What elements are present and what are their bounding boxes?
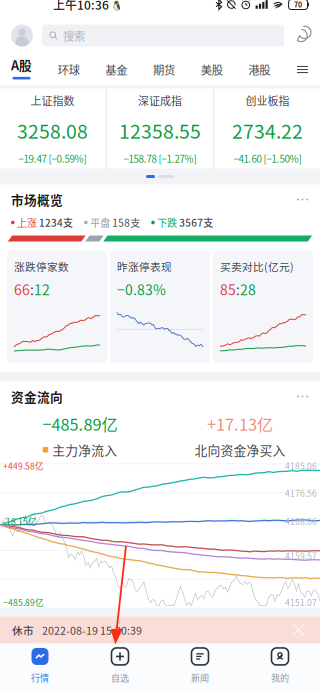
staticText: 上涨 — [17, 215, 37, 230]
staticText: 12358.55 — [119, 116, 201, 144]
staticText: 66 — [14, 279, 30, 299]
button[interactable]: A股 — [11, 54, 32, 84]
staticText: +17.13亿 — [207, 412, 273, 436]
staticText: 我的 — [271, 671, 289, 684]
button[interactable]: 搜索 — [42, 24, 284, 46]
staticText: 期货 — [153, 61, 175, 78]
button[interactable]: 深证成指 — [107, 88, 212, 168]
staticText: 新闻 — [191, 671, 209, 684]
staticText: 基金 — [105, 61, 127, 78]
staticText: 12 — [34, 279, 50, 299]
staticText: 买卖对比(亿元) — [220, 259, 294, 274]
staticText: 北向资金净买入 — [194, 440, 285, 459]
button[interactable]: 更多 — [297, 193, 309, 205]
button[interactable]: 上证指数 — [0, 88, 105, 168]
button[interactable]: 美股 — [201, 54, 223, 84]
button[interactable]: 账户 — [11, 24, 33, 46]
button[interactable]: 昨涨停表现 — [110, 250, 210, 362]
staticText: 4185.06 — [285, 459, 317, 472]
staticText: 涨跌停家数 — [14, 259, 69, 274]
staticText: 资金流向 — [11, 387, 63, 406]
staticText: 158支 — [110, 215, 140, 230]
staticText: −158.78 [−1.27%] — [123, 151, 196, 166]
staticText: −485.89亿 — [3, 596, 44, 608]
staticText: −485.89亿 — [42, 412, 117, 436]
button[interactable]: 环球 — [58, 54, 80, 84]
staticText: 港股 — [248, 61, 270, 78]
button[interactable]: 更多板块 — [296, 65, 309, 73]
button[interactable]: 期货 — [153, 54, 175, 84]
staticText: : — [236, 279, 240, 299]
button[interactable]: 行情 — [0, 643, 80, 689]
staticText: 4159.57 — [285, 550, 317, 562]
button[interactable]: 创业板指 — [215, 88, 320, 168]
staticText: 3258.08 — [17, 116, 88, 144]
staticText: 昨涨停表现 — [117, 259, 172, 274]
staticText: 搜索 — [63, 27, 85, 44]
staticText: 主力净流入 — [52, 440, 117, 459]
button[interactable]: 新闻 — [160, 643, 240, 689]
button[interactable]: 自选 — [80, 643, 160, 689]
button[interactable]: 买卖对比(亿元) — [213, 250, 313, 362]
staticText: 平盘 — [90, 215, 110, 230]
staticText: −0.83% — [117, 279, 166, 299]
staticText: 市场概览 — [11, 190, 63, 209]
staticText: −41.60 [−1.50%] — [233, 151, 301, 166]
staticText: 行情 — [31, 671, 49, 684]
staticText: 美股 — [201, 61, 223, 78]
staticText: : — [30, 279, 34, 299]
staticText: +449.58亿 — [3, 459, 44, 472]
button[interactable]: 我的 — [240, 643, 320, 689]
button[interactable]: 关闭 — [289, 620, 308, 639]
button[interactable]: 港股 — [248, 54, 270, 84]
staticText: 4151.07 — [285, 596, 317, 608]
staticText: 上证指数 — [30, 92, 74, 108]
button[interactable]: 涨跌停家数 — [7, 250, 107, 362]
staticText: 85 — [220, 279, 236, 299]
staticText: 深证成指 — [138, 92, 182, 108]
staticText: 2734.22 — [232, 116, 303, 144]
button[interactable]: 基金 — [105, 54, 127, 84]
staticText: 休市 — [12, 622, 34, 638]
staticText: 1234支 — [37, 215, 73, 230]
staticText: A股 — [11, 55, 32, 74]
button[interactable]: 夜间模式 — [293, 28, 309, 42]
staticText: −19.47 [−0.59%] — [18, 151, 86, 166]
staticText: 2022-08-19 15:30:39 — [42, 622, 142, 638]
staticText: 🐧 — [109, 0, 123, 11]
staticText: 3567支 — [177, 215, 213, 230]
staticText: 环球 — [58, 61, 80, 78]
staticText: 上午10:36 — [53, 0, 109, 13]
staticText: 下跌 — [157, 215, 177, 230]
staticText: 自选 — [111, 671, 129, 684]
staticText: -18.15亿 — [3, 515, 37, 528]
button[interactable]: 更多 — [297, 390, 309, 402]
staticText: 4176.56 — [285, 487, 317, 499]
staticText: 创业板指 — [245, 92, 289, 108]
staticText: 4168.06 — [285, 515, 317, 528]
staticText: 70 — [294, 0, 302, 9]
staticText: 28 — [240, 279, 256, 299]
